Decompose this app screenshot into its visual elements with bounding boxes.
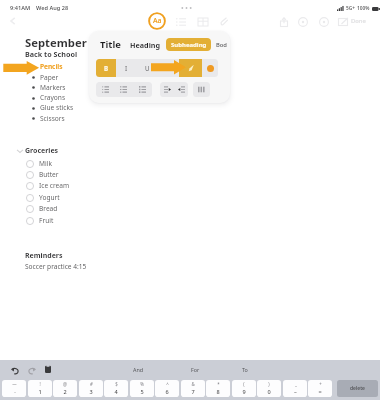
staticText: _: [295, 381, 297, 387]
staticText: Done: [351, 17, 366, 25]
button[interactable]: ): [257, 380, 281, 397]
button[interactable]: ^: [155, 380, 179, 397]
staticText: @: [63, 381, 67, 387]
staticText: $: [115, 381, 118, 387]
staticText: 9: [242, 388, 246, 396]
staticText: 1: [38, 388, 42, 396]
button[interactable]: Redo: [26, 364, 38, 376]
button[interactable]: *: [206, 380, 230, 397]
button[interactable]: And: [120, 364, 156, 375]
staticText: Wed Aug 28: [36, 4, 69, 12]
button[interactable]: Format text: [147, 12, 167, 30]
button[interactable]: Attach: [218, 15, 231, 28]
button[interactable]: U: [137, 59, 158, 77]
staticText: And: [133, 366, 144, 373]
staticText: Aa: [153, 16, 162, 26]
staticText: B: [104, 64, 109, 72]
button[interactable]: S: [158, 59, 179, 77]
staticText: S: [167, 64, 171, 72]
button[interactable]: List style 3: [133, 82, 152, 97]
staticText: —: [12, 381, 17, 387]
staticText: +: [319, 381, 322, 387]
button[interactable]: Milk: [26, 158, 90, 169]
staticText: I: [125, 64, 128, 72]
button[interactable]: Columns: [193, 82, 210, 97]
button[interactable]: Highlight: [179, 59, 202, 77]
staticText: 5G+: [346, 5, 355, 12]
button[interactable]: I: [116, 59, 137, 77]
button[interactable]: List style 1: [96, 82, 114, 97]
button[interactable]: Heading: [130, 40, 161, 50]
button[interactable]: _: [283, 380, 307, 397]
staticText: 8: [216, 388, 220, 396]
staticText: U: [145, 64, 150, 72]
staticText: Glue sticks: [40, 103, 74, 112]
button[interactable]: Colour: [202, 59, 218, 77]
button[interactable]: Outdent: [160, 82, 174, 97]
button[interactable]: Table: [196, 15, 209, 28]
button[interactable]: Markup: [296, 15, 309, 28]
button[interactable]: To: [227, 364, 263, 375]
staticText: Reminders: [25, 251, 63, 261]
staticText: 2: [63, 388, 67, 396]
staticText: 3: [89, 388, 93, 396]
button[interactable]: @: [53, 380, 77, 397]
button[interactable]: Fruit: [26, 215, 90, 226]
button[interactable]: For: [177, 364, 213, 375]
staticText: 9:41AM: [10, 4, 31, 12]
button[interactable]: —: [2, 380, 26, 397]
button[interactable]: %: [130, 380, 154, 397]
button[interactable]: Bread: [26, 203, 90, 214]
staticText: Markers: [40, 83, 66, 92]
staticText: Paper: [40, 73, 59, 82]
button[interactable]: &: [181, 380, 205, 397]
staticText: Scissors: [40, 114, 65, 123]
button[interactable]: !: [28, 380, 52, 397]
staticText: Back to School: [25, 49, 78, 59]
staticText: 7: [191, 388, 195, 396]
staticText: Milk: [39, 159, 52, 168]
button[interactable]: New note: [336, 15, 349, 28]
staticText: For: [191, 366, 200, 373]
staticText: 6: [165, 388, 169, 396]
staticText: (: [243, 381, 245, 387]
staticText: Bread: [39, 204, 58, 213]
button[interactable]: List style 2: [114, 82, 133, 97]
staticText: =: [318, 388, 322, 396]
staticText: 5: [140, 388, 144, 396]
staticText: ): [268, 381, 270, 387]
button[interactable]: Checklist: [174, 15, 187, 28]
staticText: ^: [166, 381, 169, 387]
staticText: delete: [350, 385, 365, 392]
button[interactable]: Back: [6, 14, 20, 28]
button[interactable]: Undo: [9, 364, 21, 376]
button[interactable]: Yogurt: [26, 192, 90, 203]
staticText: *: [217, 381, 220, 387]
button[interactable]: $: [104, 380, 128, 397]
button[interactable]: Bod: [216, 41, 227, 49]
button[interactable]: B: [96, 59, 116, 77]
staticText: #: [90, 381, 93, 387]
staticText: 4: [114, 388, 118, 396]
button[interactable]: (: [232, 380, 256, 397]
button[interactable]: Title: [100, 38, 121, 51]
button[interactable]: Share: [277, 15, 290, 28]
staticText: Crayons: [40, 93, 66, 102]
staticText: 100%: [357, 5, 370, 12]
staticText: %: [140, 381, 144, 387]
button[interactable]: #: [79, 380, 103, 397]
button[interactable]: Search: [317, 15, 330, 28]
button[interactable]: More: [177, 4, 195, 12]
staticText: –: [294, 388, 297, 396]
button[interactable]: Ice cream: [26, 180, 90, 191]
button[interactable]: delete: [337, 380, 378, 397]
button[interactable]: Subheading: [166, 38, 211, 51]
staticText: Ice cream: [39, 181, 70, 190]
staticText: !: [39, 381, 41, 387]
button[interactable]: +: [308, 380, 332, 397]
button[interactable]: Butter: [26, 169, 90, 180]
button[interactable]: Done: [351, 17, 366, 25]
button[interactable]: Paste: [42, 363, 54, 375]
button[interactable]: Indent: [174, 82, 188, 97]
staticText: September: [25, 35, 87, 50]
